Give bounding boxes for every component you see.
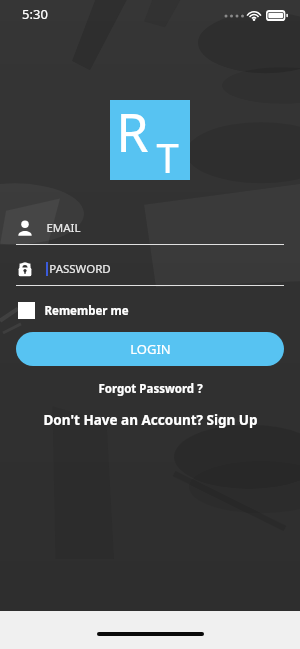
staticText: Forgot Password ? (98, 381, 203, 397)
button[interactable]: Remember me (16, 299, 131, 322)
other: Email (17, 220, 33, 236)
staticText: Don't Have an Account? Sign Up (43, 411, 258, 429)
staticText: PASSWORD (49, 261, 111, 277)
button[interactable]: Password (0, 253, 300, 286)
button[interactable]: LOGIN (16, 332, 284, 366)
staticText: LOGIN (130, 340, 171, 358)
button[interactable]: Forgot Password ? (88, 378, 213, 400)
button[interactable]: Email (0, 212, 300, 245)
staticText: T (156, 130, 179, 184)
other: Password (17, 261, 33, 277)
staticText: Remember me (44, 303, 129, 319)
staticText: 5:30 (22, 5, 48, 23)
staticText: EMAIL (46, 220, 81, 236)
button[interactable]: Don't Have an Account? Sign Up (33, 408, 268, 432)
staticText: R (116, 96, 149, 167)
